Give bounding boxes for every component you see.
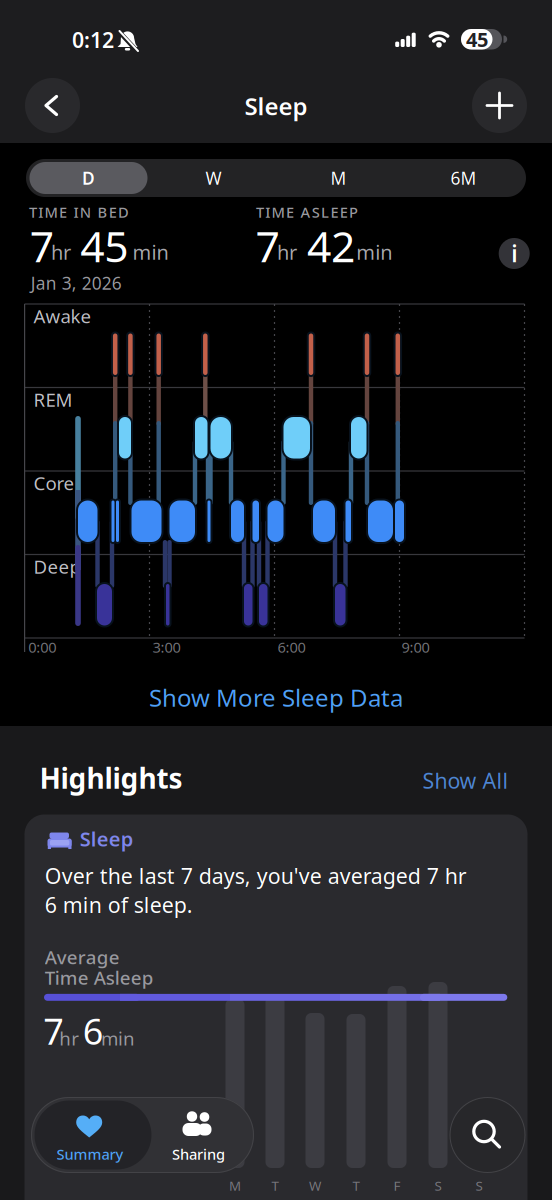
staticText: T: [271, 1177, 278, 1194]
staticText: 45: [80, 217, 128, 274]
staticText: S: [475, 1177, 482, 1194]
button[interactable]: [24, 814, 527, 1200]
staticText: Average: [45, 945, 120, 969]
staticText: D: [82, 166, 95, 189]
staticText: T: [352, 1177, 359, 1194]
staticText: Awake: [33, 304, 91, 328]
staticText: hr: [51, 239, 71, 265]
staticText: Highlights: [39, 759, 182, 796]
staticText: Sleep: [244, 90, 307, 122]
staticText: 0:12: [72, 26, 114, 54]
staticText: F: [393, 1177, 400, 1194]
staticText: 7: [30, 217, 54, 274]
staticText: 6:00: [277, 637, 305, 657]
staticText: Over the last 7 days, you've averaged 7 …: [45, 862, 467, 890]
staticText: Show More Sleep Data: [149, 682, 403, 713]
staticText: REM: [33, 387, 72, 412]
staticText: 6 min of sleep.: [45, 891, 193, 919]
button[interactable]: D: [26, 159, 151, 197]
staticText: min: [132, 239, 168, 265]
staticText: TIME IN BED: [29, 202, 129, 222]
staticText: 7: [255, 217, 279, 274]
staticText: 6M: [450, 166, 476, 189]
staticText: 42: [307, 217, 355, 274]
staticText: Sharing: [172, 1144, 225, 1164]
button[interactable]: Show More Sleep Data: [149, 682, 403, 713]
staticText: min: [101, 1026, 135, 1051]
button[interactable]: [472, 78, 527, 133]
staticText: Core: [33, 471, 74, 495]
staticText: Show All: [422, 766, 508, 795]
staticText: hr: [59, 1026, 79, 1051]
button[interactable]: 6M: [401, 159, 526, 197]
button[interactable]: W: [151, 159, 276, 197]
staticText: W: [205, 166, 221, 189]
staticText: 7: [43, 1007, 64, 1055]
button[interactable]: M: [276, 159, 401, 197]
staticText: Summary: [56, 1144, 123, 1164]
staticText: M: [229, 1177, 241, 1194]
staticText: 9:00: [401, 637, 429, 657]
staticText: Time Asleep: [45, 965, 154, 990]
button[interactable]: Sharing: [152, 1100, 245, 1169]
staticText: Sleep: [80, 825, 134, 852]
staticText: TIME ASLEEP: [256, 202, 358, 222]
staticText: min: [356, 239, 392, 265]
staticText: W: [309, 1177, 321, 1194]
staticText: i: [511, 238, 517, 268]
staticText: 6: [83, 1007, 104, 1055]
button[interactable]: Summary: [34, 1100, 151, 1169]
button[interactable]: Show All: [422, 766, 508, 795]
staticText: Jan 3, 2026: [31, 271, 122, 294]
staticText: S: [434, 1177, 441, 1194]
staticText: Deep: [33, 554, 80, 579]
staticText: hr: [277, 239, 297, 265]
staticText: 0:00: [28, 637, 56, 657]
button[interactable]: [25, 78, 80, 133]
staticText: M: [330, 166, 346, 189]
staticText: 3:00: [152, 637, 180, 657]
button[interactable]: i: [499, 238, 530, 269]
button[interactable]: [449, 1097, 525, 1173]
staticText: 45: [466, 26, 488, 52]
